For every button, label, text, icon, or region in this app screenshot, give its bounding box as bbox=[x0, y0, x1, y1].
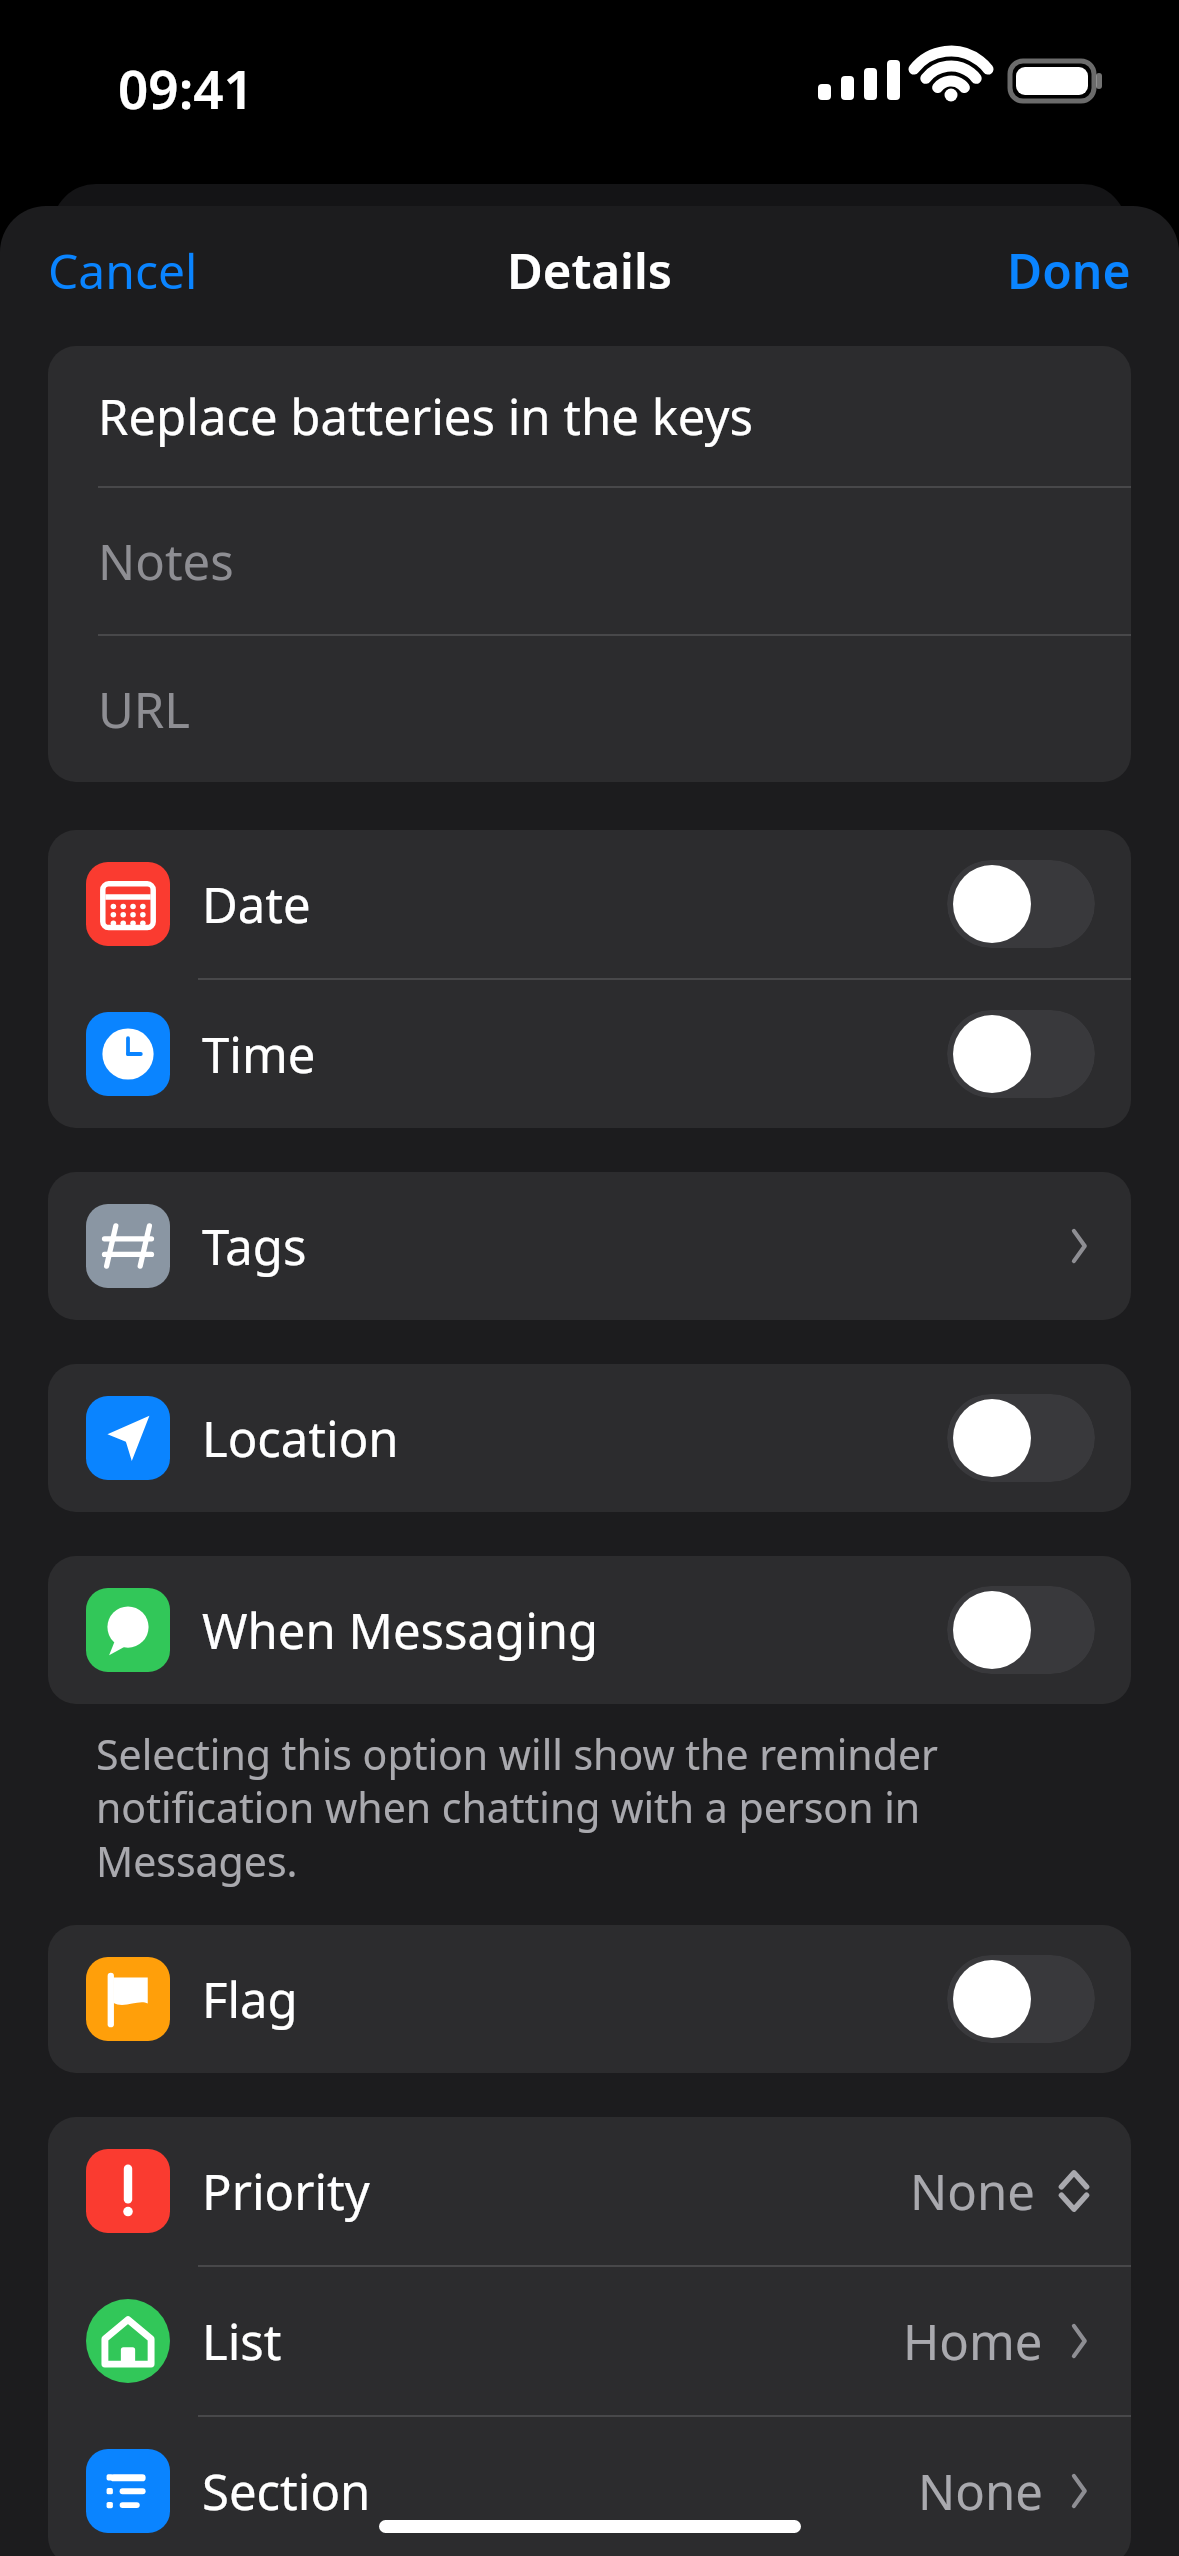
button[interactable]: When Messaging bbox=[48, 1556, 1131, 1704]
staticText: Details bbox=[507, 237, 672, 304]
button[interactable]: Date toggle bbox=[947, 860, 1095, 948]
button[interactable]: Date bbox=[48, 830, 1131, 978]
button[interactable]: Location bbox=[48, 1364, 1131, 1512]
staticText: List bbox=[202, 2308, 282, 2375]
staticText: Time bbox=[202, 1021, 316, 1088]
button[interactable]: Section bbox=[48, 2417, 1131, 2556]
staticText: None bbox=[918, 2458, 1043, 2525]
staticText: When Messaging bbox=[202, 1597, 599, 1664]
staticText: Priority bbox=[202, 2158, 370, 2225]
staticText: Cancel bbox=[48, 238, 198, 303]
button[interactable]: URL bbox=[48, 636, 1131, 782]
staticText: Flag bbox=[202, 1966, 298, 2033]
button[interactable]: Location toggle bbox=[947, 1394, 1095, 1482]
staticText: URL bbox=[98, 676, 190, 743]
button[interactable]: Notes bbox=[48, 488, 1131, 634]
button[interactable]: Flag bbox=[48, 1925, 1131, 2073]
button[interactable]: Priority bbox=[48, 2117, 1131, 2265]
button[interactable]: Flag toggle bbox=[947, 1955, 1095, 2043]
staticText: Home bbox=[903, 2308, 1043, 2375]
staticText: Date bbox=[202, 871, 311, 938]
staticText: Tags bbox=[202, 1213, 307, 1280]
button[interactable]: Cancel bbox=[22, 222, 224, 319]
button[interactable]: Time bbox=[48, 980, 1131, 1128]
staticText: Done bbox=[1007, 238, 1131, 303]
staticText: None bbox=[910, 2158, 1035, 2225]
staticText: 09:41 bbox=[118, 52, 254, 124]
staticText: Section bbox=[202, 2458, 371, 2525]
button[interactable]: Time toggle bbox=[947, 1010, 1095, 1098]
button[interactable]: When Messaging toggle bbox=[947, 1586, 1095, 1674]
staticText: Selecting this option will show the remi… bbox=[96, 1726, 1131, 1889]
staticText: Replace batteries in the keys bbox=[98, 383, 753, 450]
button[interactable]: Tags bbox=[48, 1172, 1131, 1320]
button[interactable]: Replace batteries in the keys bbox=[48, 346, 1131, 486]
button[interactable]: List bbox=[48, 2267, 1131, 2415]
staticText: Notes bbox=[98, 528, 234, 595]
staticText: Location bbox=[202, 1405, 399, 1472]
button[interactable]: Done bbox=[981, 222, 1157, 319]
